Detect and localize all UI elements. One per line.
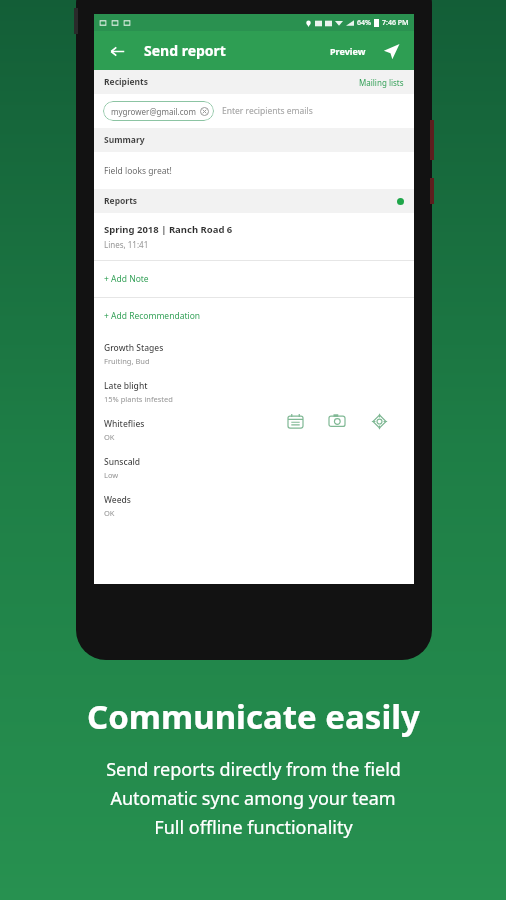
staticText: Recipients: [104, 76, 149, 88]
staticText: 15% plants infested: [104, 394, 173, 404]
staticText: Reports: [104, 195, 138, 207]
staticText: 7:46 PM: [382, 18, 409, 28]
button[interactable]: Field looks great!: [94, 152, 414, 189]
button[interactable]: Spring 2018 | Ranch Road 6: [94, 213, 414, 260]
button[interactable]: Send: [378, 38, 404, 64]
staticText: Send reports directly from the field: [106, 757, 401, 782]
button[interactable]: Location: [368, 410, 390, 432]
button[interactable]: Preview: [326, 41, 370, 61]
button[interactable]: Reports: [94, 189, 414, 213]
staticText: Field looks great!: [104, 165, 172, 177]
staticText: Enter recipients emails: [222, 105, 313, 117]
staticText: Mailing lists: [359, 77, 404, 88]
staticText: OK: [104, 432, 115, 442]
staticText: Lines, 11:41: [104, 239, 149, 250]
staticText: + Add Recommendation: [104, 310, 201, 322]
button[interactable]: Growth Stages: [94, 334, 414, 372]
staticText: Communicate easily: [87, 694, 420, 739]
button[interactable]: Late blight: [94, 372, 414, 410]
staticText: Weeds: [104, 494, 131, 506]
staticText: Growth Stages: [104, 342, 164, 354]
button[interactable]: Sunscald: [94, 448, 414, 486]
staticText: Send report: [144, 41, 226, 60]
staticText: Sunscald: [104, 456, 141, 468]
staticText: Fruiting, Bud: [104, 356, 150, 366]
button[interactable]: Summary: [94, 128, 414, 152]
staticText: Preview: [330, 45, 366, 57]
staticText: 64%: [357, 18, 371, 28]
staticText: Whiteflies: [104, 418, 145, 430]
button[interactable]: mygrower@gmail.com: [94, 94, 414, 128]
button[interactable]: Weeds: [94, 486, 414, 524]
staticText: mygrower@gmail.com: [111, 106, 196, 117]
staticText: Late blight: [104, 380, 148, 392]
button[interactable]: Recipients: [94, 70, 414, 94]
staticText: + Add Note: [104, 273, 149, 285]
staticText: Full offline functionality: [154, 815, 353, 840]
button[interactable]: mygrower@gmail.com: [103, 101, 214, 121]
button[interactable]: Take photo: [326, 410, 348, 432]
button[interactable]: Add note: [284, 410, 306, 432]
staticText: OK: [104, 508, 115, 518]
button[interactable]: + Add Recommendation: [94, 298, 414, 334]
button[interactable]: + Add Note: [94, 261, 414, 297]
staticText: Automatic sync among your team: [110, 786, 396, 811]
staticText: Summary: [104, 134, 145, 146]
staticText: Spring 2018 | Ranch Road 6: [104, 223, 233, 236]
staticText: Low: [104, 470, 119, 480]
button[interactable]: Whiteflies: [94, 410, 414, 448]
button[interactable]: Back: [104, 38, 130, 64]
